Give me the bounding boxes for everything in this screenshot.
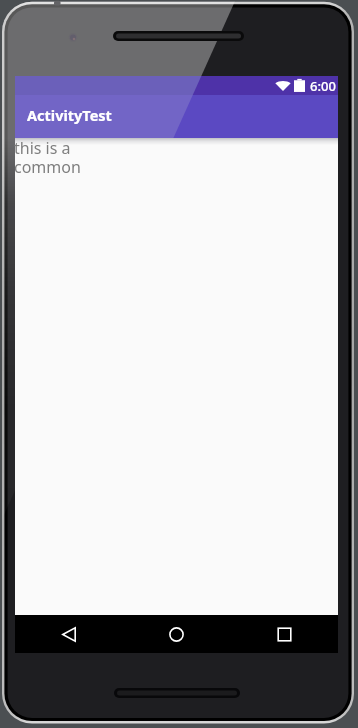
staticText: this is a common bbox=[14, 137, 82, 178]
staticText: ActivityTest bbox=[27, 105, 112, 125]
button[interactable]: Recent apps bbox=[230, 615, 338, 653]
button[interactable]: Home bbox=[122, 615, 230, 653]
button[interactable]: Back bbox=[15, 615, 122, 653]
staticText: 6:00 bbox=[310, 77, 336, 95]
